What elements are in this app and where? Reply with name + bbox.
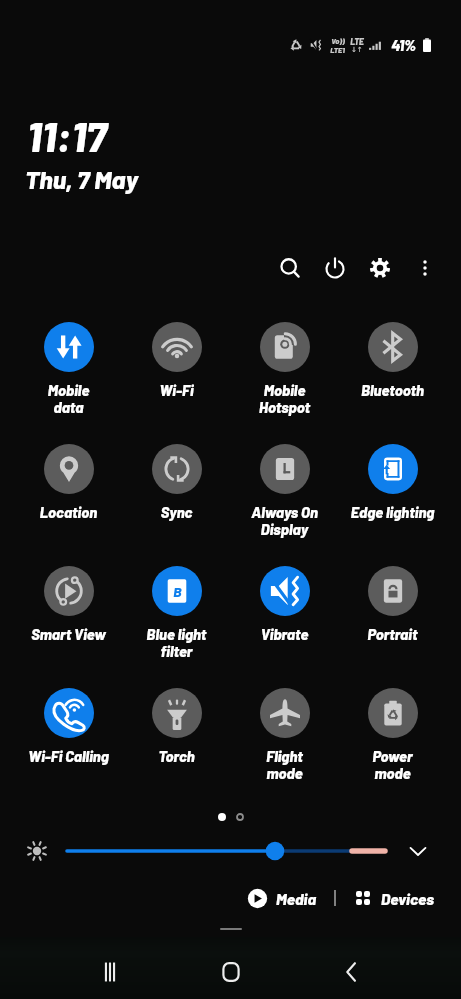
button[interactable]: Torch (123, 688, 230, 810)
button[interactable]: Auto brightness (24, 838, 50, 864)
staticText: LTE (350, 36, 364, 46)
staticText: Portrait (339, 625, 446, 643)
button[interactable]: Brightness (58, 836, 394, 866)
button[interactable]: Devices (353, 888, 434, 908)
button[interactable]: Expand quick settings (400, 836, 436, 866)
button[interactable]: Search (270, 248, 310, 288)
staticText: LTE1 (330, 45, 345, 54)
staticText: Media (276, 889, 317, 908)
button[interactable]: Settings (360, 248, 400, 288)
staticText: Bluetooth (339, 381, 446, 399)
staticText: Vo)) (331, 36, 345, 45)
button[interactable]: Wi-Fi Calling (15, 688, 122, 810)
button[interactable]: Power off (315, 248, 355, 288)
button[interactable]: Edge lighting (339, 444, 446, 566)
staticText: Wi-Fi (123, 381, 230, 399)
staticText: Power mode (339, 747, 446, 782)
button[interactable]: Always On Display (231, 444, 338, 566)
staticText: Flight mode (231, 747, 338, 782)
staticText: Wi-Fi Calling (15, 747, 122, 765)
staticText: B (173, 583, 182, 600)
staticText: 11:17 (27, 110, 107, 160)
button[interactable]: Location (15, 444, 122, 566)
staticText: Vibrate (231, 625, 338, 643)
button[interactable]: Recents (88, 950, 132, 994)
button[interactable]: Flight mode (231, 688, 338, 810)
staticText: Devices (381, 889, 434, 908)
button[interactable]: Home (209, 950, 253, 994)
button[interactable]: Blue light filter (123, 566, 230, 688)
button[interactable]: Portrait (339, 566, 446, 688)
staticText: Sync (123, 503, 230, 521)
button[interactable]: Bluetooth (339, 322, 446, 444)
staticText: Thu, 7 May (25, 164, 139, 194)
button[interactable]: Mobile data (15, 322, 122, 444)
button[interactable]: Back (329, 950, 373, 994)
button[interactable]: Mobile Hotspot (231, 322, 338, 444)
button[interactable]: Wi-Fi (123, 322, 230, 444)
staticText: Always On Display (231, 503, 338, 538)
button[interactable]: Vibrate (231, 566, 338, 688)
staticText: Blue light filter (123, 625, 230, 660)
staticText: Edge lighting (339, 503, 446, 521)
staticText: Mobile data (15, 381, 122, 416)
staticText: ↓↑ (351, 46, 363, 54)
staticText: 41% (391, 36, 416, 54)
button[interactable]: Media (247, 888, 317, 909)
button[interactable]: Sync (123, 444, 230, 566)
staticText: Smart View (15, 625, 122, 643)
button[interactable]: Smart View (15, 566, 122, 688)
staticText: Location (15, 503, 122, 521)
button[interactable]: Power mode (339, 688, 446, 810)
staticText: Torch (123, 747, 230, 765)
button[interactable]: More options (405, 248, 445, 288)
staticText: Mobile Hotspot (231, 381, 338, 416)
